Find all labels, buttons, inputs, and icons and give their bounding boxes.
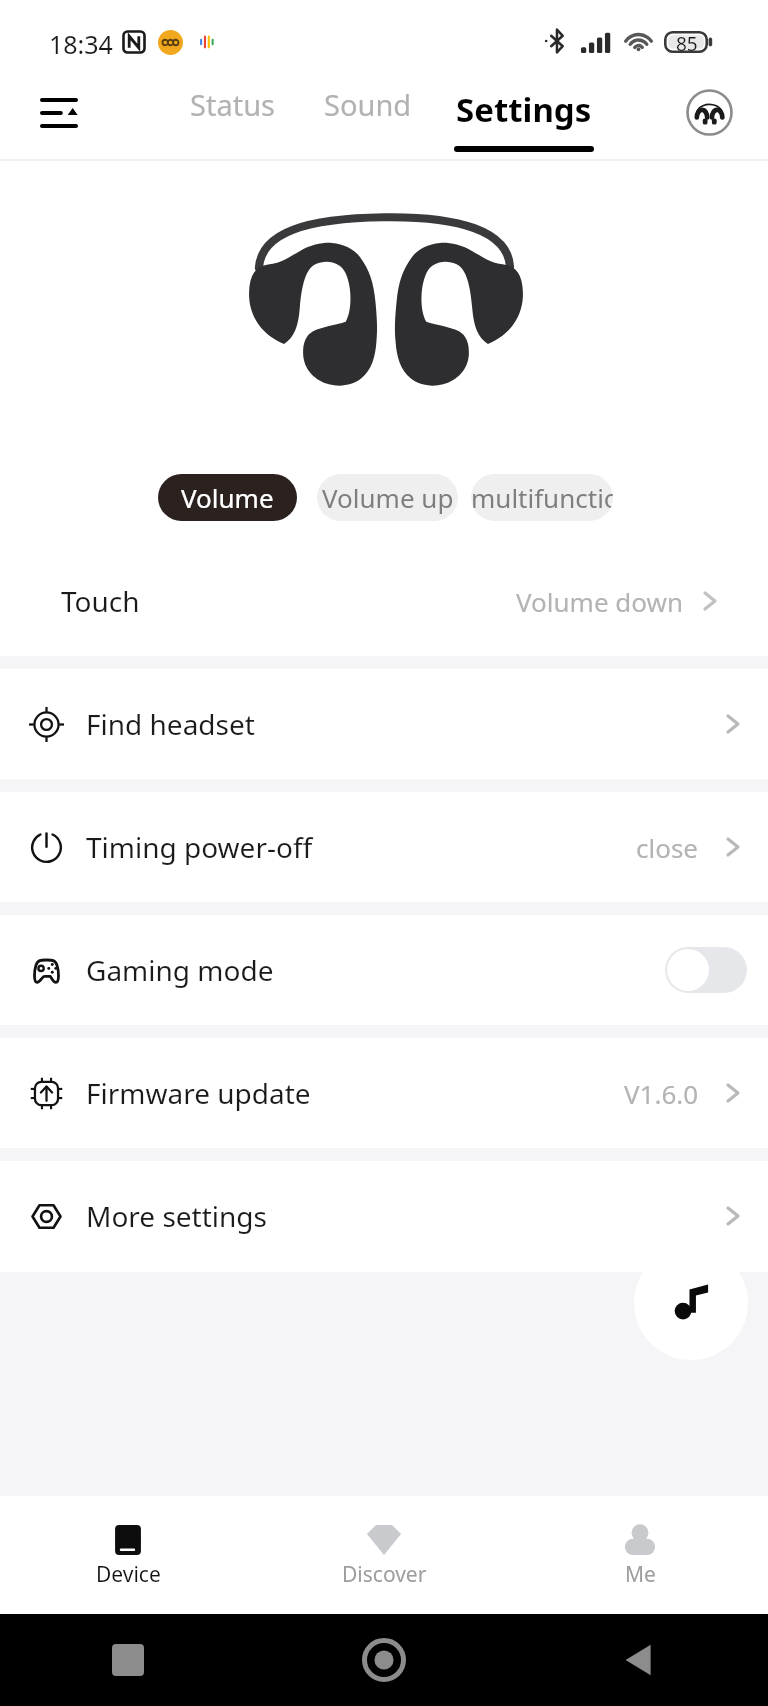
button[interactable]: More settings: [0, 1161, 768, 1271]
staticText: multifunction: [471, 480, 613, 515]
button[interactable]: Menu: [28, 82, 90, 144]
staticText: Gaming mode: [86, 951, 274, 989]
button[interactable]: Gaming mode: [0, 915, 768, 1025]
button[interactable]: multifunction: [471, 474, 613, 521]
staticText: 85: [676, 31, 698, 53]
button[interactable]: Sound: [308, 77, 428, 132]
staticText: Volume up: [322, 480, 454, 515]
staticText: 18:34: [49, 27, 113, 61]
staticText: close: [636, 830, 699, 865]
button[interactable]: Music player: [634, 1246, 748, 1360]
staticText: Sound: [324, 85, 412, 124]
button[interactable]: Gaming mode toggle: [665, 947, 747, 993]
button[interactable]: Home: [362, 1638, 406, 1682]
button[interactable]: Volume up: [317, 474, 458, 521]
button[interactable]: Me: [512, 1496, 768, 1614]
staticText: Device: [96, 1560, 161, 1589]
button[interactable]: Device: [0, 1496, 256, 1614]
staticText: V1.6.0: [624, 1076, 699, 1111]
button[interactable]: Discover: [256, 1496, 512, 1614]
button[interactable]: Headset info: [678, 81, 740, 143]
staticText: Discover: [342, 1560, 427, 1589]
button[interactable]: Recent apps: [112, 1644, 144, 1676]
staticText: Find headset: [86, 705, 255, 743]
button[interactable]: Firmware update: [0, 1038, 768, 1148]
staticText: Volume: [181, 480, 274, 515]
staticText: Firmware update: [86, 1074, 311, 1112]
button[interactable]: Status: [174, 77, 291, 132]
staticText: Settings: [456, 87, 592, 132]
staticText: More settings: [86, 1197, 267, 1235]
button[interactable]: Settings: [438, 87, 610, 152]
staticText: Volume down: [516, 584, 684, 619]
staticText: Me: [625, 1560, 656, 1589]
button[interactable]: Volume: [158, 474, 297, 521]
staticText: Status: [190, 85, 275, 124]
button[interactable]: Touch: [0, 561, 768, 641]
staticText: Timing power-off: [86, 828, 313, 866]
button[interactable]: Find headset: [0, 669, 768, 779]
button[interactable]: Back: [621, 1641, 659, 1679]
staticText: Touch: [61, 582, 140, 620]
button[interactable]: Timing power-off: [0, 792, 768, 902]
